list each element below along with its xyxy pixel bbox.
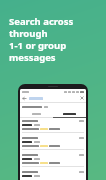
button[interactable] (20, 110, 53, 117)
staticText: 1-1 or group messages (9, 39, 97, 63)
button[interactable]: Back (22, 96, 27, 101)
button[interactable] (53, 110, 86, 117)
button[interactable] (20, 118, 86, 135)
button[interactable]: Clear search (80, 96, 84, 100)
button[interactable]: Back (20, 94, 86, 102)
staticText: Search across through (9, 15, 97, 39)
button[interactable] (20, 169, 86, 180)
button[interactable] (20, 135, 86, 152)
button[interactable] (20, 152, 86, 169)
button[interactable] (22, 106, 42, 108)
